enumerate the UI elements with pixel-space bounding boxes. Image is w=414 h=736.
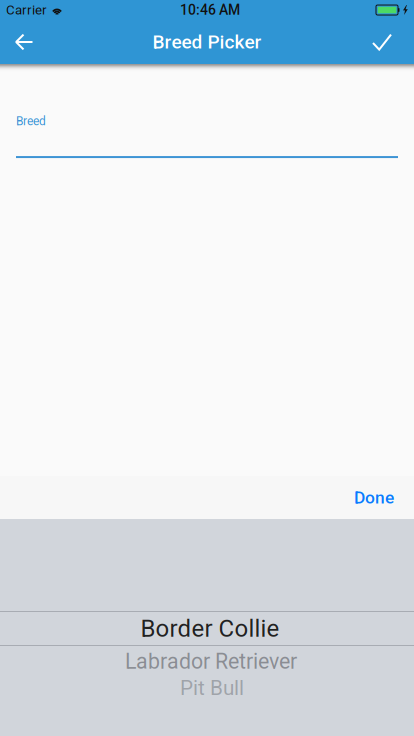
button[interactable]: Done	[334, 473, 414, 522]
staticText: 10:46 AM	[180, 2, 240, 18]
staticText: Labrador Retriever	[125, 649, 297, 674]
staticText: Pit Bull	[180, 676, 244, 700]
staticText: Border Collie	[140, 614, 279, 642]
staticText: Done	[354, 487, 394, 508]
staticText: Carrier	[6, 2, 47, 18]
button[interactable]: Save	[358, 20, 406, 64]
button[interactable]: Back	[0, 20, 48, 64]
staticText: Breed	[16, 114, 46, 128]
staticText: Breed Picker	[152, 31, 261, 53]
